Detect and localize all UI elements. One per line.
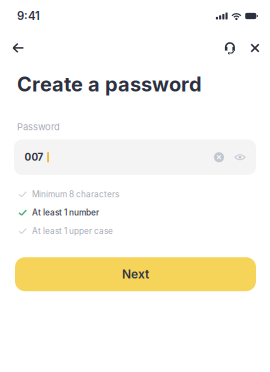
- button[interactable]: Clear password: [209, 145, 229, 169]
- staticText: 9:41: [17, 9, 40, 23]
- button[interactable]: Back: [4, 35, 32, 61]
- staticText: At least 1 upper case: [32, 226, 113, 236]
- staticText: Password: [17, 121, 60, 132]
- button[interactable]: Support: [217, 35, 242, 61]
- staticText: 007: [24, 151, 43, 163]
- button[interactable]: Next: [0, 257, 270, 291]
- staticText: Minimum 8 characters: [32, 189, 119, 199]
- button[interactable]: Show password: [229, 145, 251, 169]
- staticText: At least 1 number: [32, 208, 99, 218]
- staticText: Next: [122, 267, 149, 281]
- button[interactable]: Close: [242, 35, 267, 61]
- staticText: Create a password: [17, 72, 202, 96]
